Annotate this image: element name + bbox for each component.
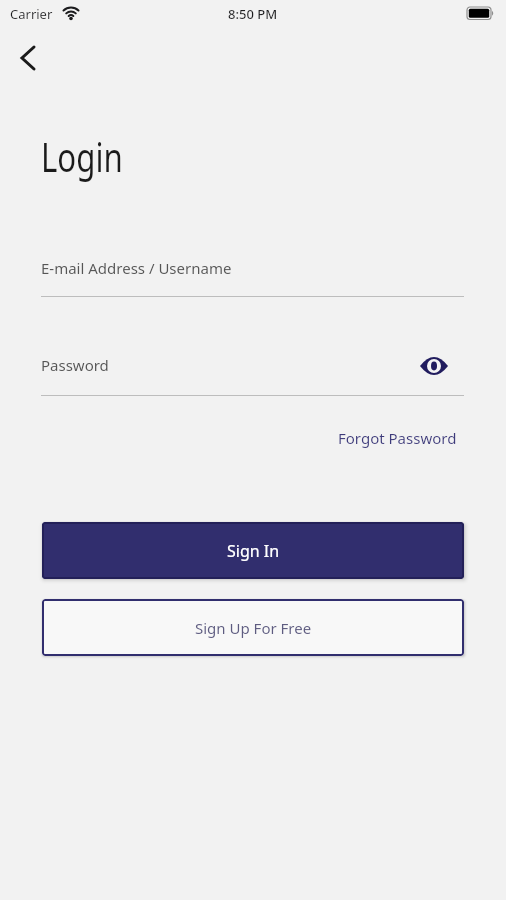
- staticText: Login: [41, 129, 123, 183]
- staticText: 8:50 PM: [228, 5, 278, 23]
- staticText: Password: [41, 355, 109, 375]
- button[interactable]: Sign In: [42, 522, 464, 579]
- staticText: E-mail Address / Username: [41, 258, 232, 278]
- button[interactable]: Sign Up For Free: [42, 599, 464, 656]
- button[interactable]: [8, 38, 48, 78]
- staticText: Sign In: [227, 540, 280, 562]
- staticText: Carrier: [10, 5, 53, 23]
- button[interactable]: Forgot Password: [338, 428, 457, 448]
- button[interactable]: [414, 348, 454, 384]
- staticText: Sign Up For Free: [195, 618, 312, 638]
